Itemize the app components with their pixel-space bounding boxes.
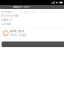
staticText: Delivery date — [1, 14, 19, 17]
staticText: Payment — [1, 18, 12, 21]
button[interactable]: Acme Store — [0, 29, 64, 37]
staticText: Summary — [1, 10, 11, 13]
staticText: Contact — [1, 22, 11, 26]
staticText: example.com — [13, 5, 29, 9]
staticText: 12 May 2024 · 10:24 — [19, 10, 49, 13]
staticText: Acme Store — [10, 29, 25, 33]
staticText: Order ready — [10, 33, 26, 37]
button[interactable]: example.com — [0, 5, 64, 9]
